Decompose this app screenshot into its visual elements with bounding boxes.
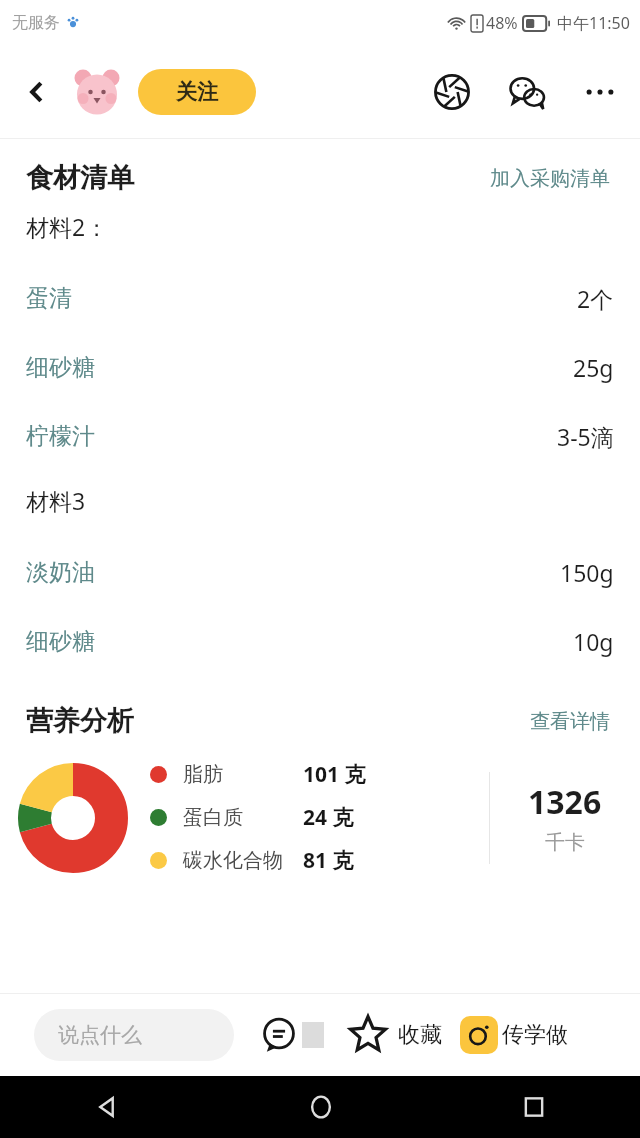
button[interactable]: 查看详情 <box>526 705 614 738</box>
staticText: 材料2： <box>26 211 109 242</box>
button[interactable]: 细砂糖 <box>0 333 640 402</box>
staticText: 蛋清 <box>26 284 72 313</box>
staticText: 查看详情 <box>530 709 610 734</box>
staticText: 柠檬汁 <box>26 422 95 451</box>
button[interactable]: Share to WeChat <box>502 66 554 118</box>
staticText: 81 克 <box>303 846 354 875</box>
staticText: 24 克 <box>303 803 354 832</box>
staticText: 关注 <box>176 79 218 105</box>
staticText: 10g <box>573 626 614 657</box>
staticText: 说点什么 <box>58 1022 142 1048</box>
button[interactable]: Back <box>14 69 60 115</box>
staticText: 细砂糖 <box>26 627 95 656</box>
staticText: 101 克 <box>303 760 366 789</box>
staticText: 传学做 <box>502 1021 568 1049</box>
button[interactable]: 蛋清 <box>0 264 640 333</box>
staticText: 加入采购清单 <box>490 166 610 191</box>
staticText: 细砂糖 <box>26 353 95 382</box>
staticText: 脂肪 <box>183 762 223 787</box>
staticText: 中午11:50 <box>557 12 630 34</box>
staticText: 千卡 <box>545 830 585 855</box>
button[interactable]: More options <box>574 66 626 118</box>
staticText: 淡奶油 <box>26 558 95 587</box>
button[interactable]: Camera <box>426 66 478 118</box>
button[interactable]: 加入采购清单 <box>486 162 614 195</box>
button[interactable]: 柠檬汁 <box>0 402 640 471</box>
button[interactable]: 淡奶油 <box>0 538 640 607</box>
staticText: 食材清单 <box>26 161 134 195</box>
staticText: 150g <box>560 557 614 588</box>
staticText: 3-5滴 <box>557 421 614 452</box>
button[interactable]: Back <box>0 1076 214 1138</box>
button[interactable]: 说点什么 <box>34 1009 234 1061</box>
staticText: 蛋白质 <box>183 805 243 830</box>
button[interactable]: 关注 <box>138 69 256 115</box>
staticText: 碳水化合物 <box>183 848 283 873</box>
button[interactable]: 细砂糖 <box>0 607 640 676</box>
staticText: 材料3 <box>26 485 86 516</box>
staticText: 25g <box>573 352 614 383</box>
button[interactable]: Recent apps <box>427 1076 640 1138</box>
staticText: 1326 <box>528 780 602 824</box>
button[interactable]: 收藏 <box>348 1015 442 1055</box>
button[interactable]: Comments <box>258 1016 326 1054</box>
staticText: 2个 <box>577 283 614 314</box>
button[interactable]: Home <box>214 1076 427 1138</box>
staticText: 营养分析 <box>26 704 134 738</box>
staticText: 无服务 <box>12 13 60 33</box>
staticText: 收藏 <box>398 1021 442 1049</box>
staticText: 48% <box>486 12 518 34</box>
button[interactable]: Author avatar <box>72 67 122 117</box>
button[interactable]: 传学做 <box>460 1016 568 1054</box>
